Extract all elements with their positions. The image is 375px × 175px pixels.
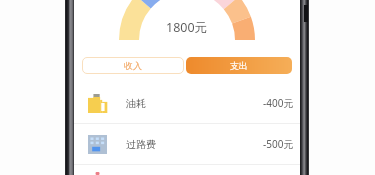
staticText: 过路费 [126,138,156,151]
button[interactable]: 油耗 [74,83,300,123]
staticText: 支出 [230,60,248,71]
staticText: -500元 [263,137,294,151]
staticText: 1800元 [166,19,208,36]
button[interactable]: Parking expense item [74,165,300,175]
staticText: 收入 [124,60,142,71]
button[interactable]: 支出 [186,57,292,74]
staticText: -400元 [263,96,294,110]
button[interactable]: 收入 [82,57,184,74]
button[interactable]: 过路费 [74,124,300,164]
staticText: 油耗 [126,97,146,110]
